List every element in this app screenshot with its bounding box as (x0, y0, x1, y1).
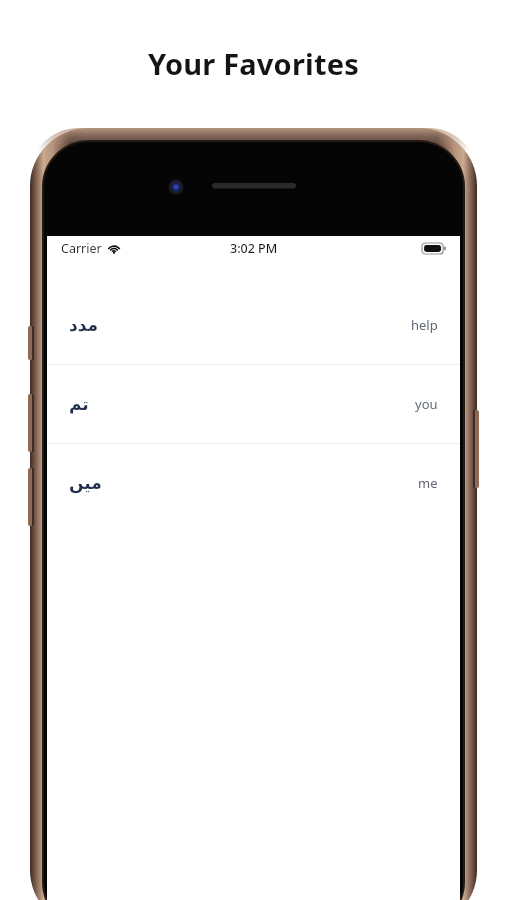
button[interactable]: مدد (47, 286, 460, 364)
staticText: Your Favorites (0, 44, 507, 83)
staticText: me (418, 474, 438, 492)
staticText: 3:02 PM (230, 240, 278, 257)
staticText: you (415, 395, 438, 413)
staticText: میں (69, 473, 102, 493)
button[interactable]: میں (47, 444, 460, 522)
staticText: Carrier (61, 240, 102, 257)
button[interactable]: تم (47, 365, 460, 443)
staticText: تم (69, 394, 89, 414)
staticText: help (411, 316, 438, 334)
staticText: مدد (69, 315, 99, 335)
